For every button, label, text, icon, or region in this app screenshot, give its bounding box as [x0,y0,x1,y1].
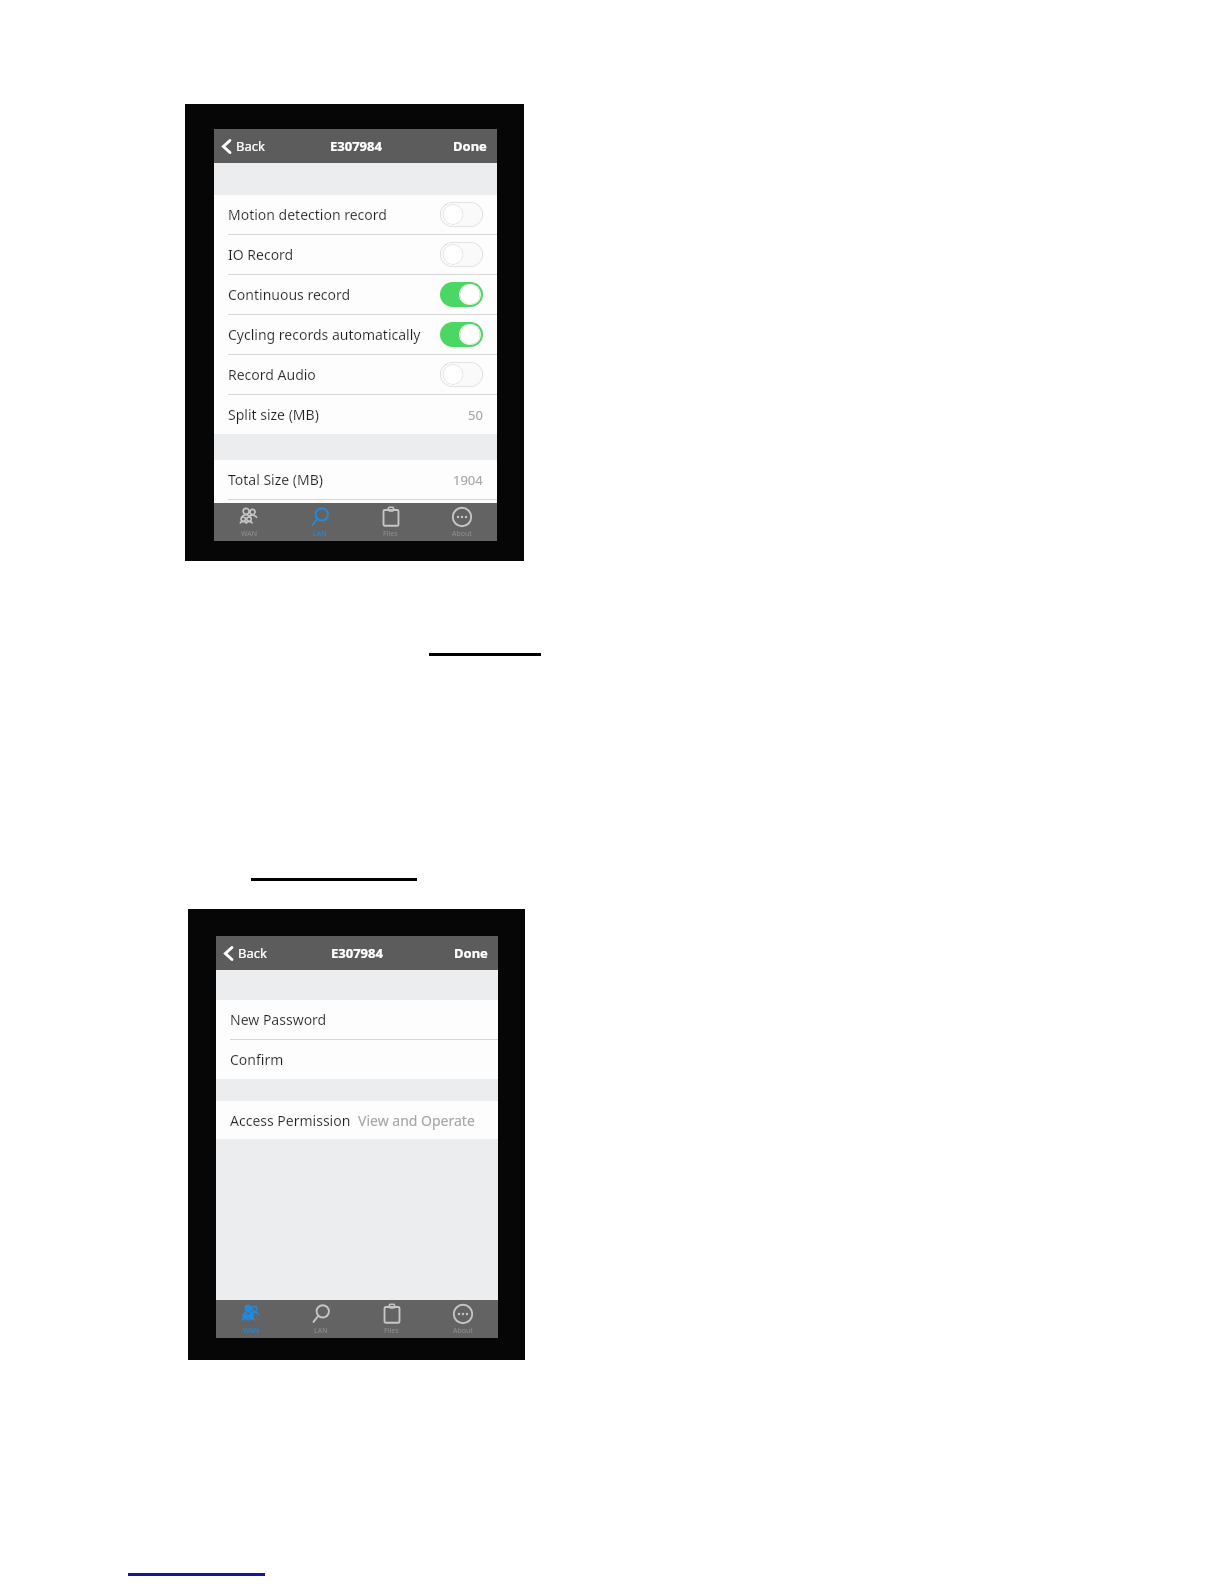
button[interactable] [440,362,483,387]
staticText: About [453,1326,473,1336]
staticText: WAN [243,1326,260,1336]
button[interactable]: Motion detection record [214,195,497,234]
staticText: LAN [314,1326,328,1336]
button[interactable]: LAN [284,503,355,541]
button[interactable]: Files [356,1300,427,1338]
staticText: Access Permission [230,1111,351,1130]
staticText: Cycling records automatically [228,325,421,344]
staticText: LAN [313,529,327,539]
button[interactable]: WAN [216,1300,286,1338]
staticText: Record Audio [228,365,316,384]
button[interactable] [440,202,483,227]
staticText: E307984 [330,137,382,155]
staticText: 1904 [453,471,483,489]
staticText: Back [238,944,267,962]
button[interactable]: Files [355,503,426,541]
staticText: IO Record [228,245,294,264]
button[interactable]: IO Record [214,235,497,274]
button[interactable]: WAN [214,503,284,541]
button[interactable]: New Password [216,1000,498,1039]
staticText: Total Size (MB) [228,470,324,489]
button[interactable]: Done [443,129,497,163]
staticText: Motion detection record [228,205,387,224]
staticText: Files [384,1326,399,1336]
staticText: Back [236,137,265,155]
button[interactable]: Back [214,131,273,161]
staticText: Continuous record [228,285,351,304]
button[interactable]: Cycling records automatically [214,315,497,354]
button[interactable]: Split size (MB) [214,395,497,434]
button[interactable]: Record Audio [214,355,497,394]
staticText: WAN [241,529,258,539]
button[interactable] [440,242,483,267]
staticText: View and Operate [358,1111,475,1130]
button[interactable]: Access Permission [216,1101,498,1139]
staticText: Confirm [230,1050,284,1069]
button[interactable]: Done [444,936,498,970]
button[interactable]: Back [216,938,275,968]
staticText: Files [383,529,398,539]
button[interactable] [440,282,483,307]
staticText: New Password [230,1010,327,1029]
button[interactable]: About [426,503,497,541]
staticText: About [452,529,472,539]
button[interactable]: Confirm [216,1040,498,1079]
button[interactable]: LAN [286,1300,356,1338]
staticText: 50 [468,406,483,424]
button[interactable]: About [427,1300,498,1338]
staticText: E307984 [331,944,383,962]
staticText: Split size (MB) [228,405,319,424]
button[interactable]: Total Size (MB) [214,460,497,499]
button[interactable] [440,322,483,347]
button[interactable]: Continuous record [214,275,497,314]
